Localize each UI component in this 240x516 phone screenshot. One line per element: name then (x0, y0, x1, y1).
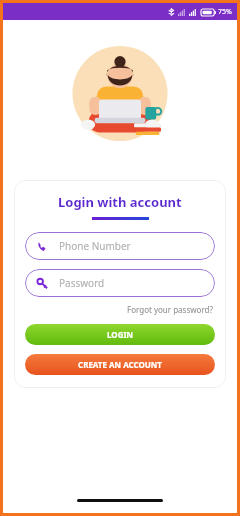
button[interactable]: Forgot your password? (125, 301, 215, 318)
staticText: Forgot your password? (127, 304, 213, 315)
staticText: Login with account (58, 193, 182, 211)
staticText: Password (59, 276, 105, 290)
button[interactable]: Password field (25, 269, 215, 297)
staticText: 75% (218, 7, 232, 17)
staticText: LOGIN (107, 329, 134, 340)
staticText: Phone Number (59, 239, 131, 253)
button[interactable]: LOGIN (25, 324, 215, 345)
staticText: CREATE AN ACCOUNT (78, 359, 162, 370)
button[interactable]: CREATE AN ACCOUNT (25, 354, 215, 375)
button[interactable]: Phone number field (25, 232, 215, 260)
